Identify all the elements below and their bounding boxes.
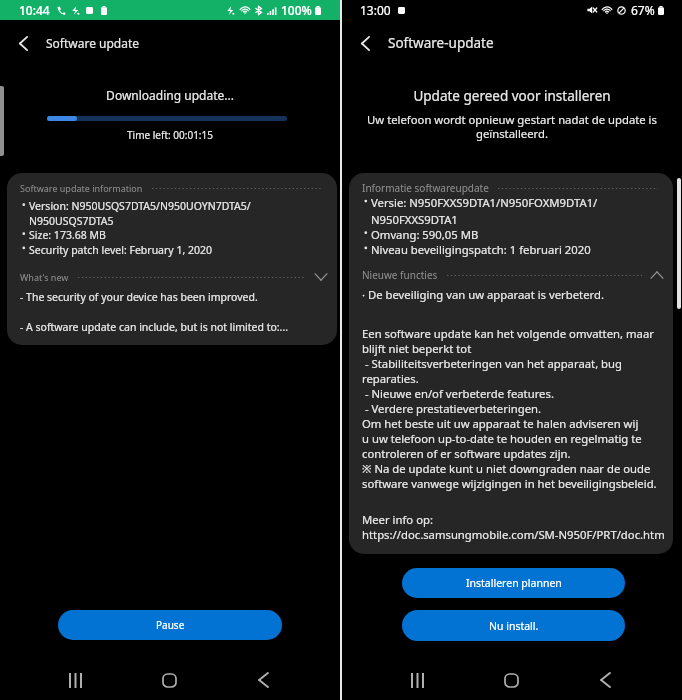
button[interactable]: Pause	[58, 610, 282, 640]
button[interactable]: Back	[558, 660, 652, 700]
staticText: Informatie softwareupdate	[362, 181, 489, 195]
staticText: Nieuwe functies	[362, 268, 438, 282]
staticText: - The security of your device has been i…	[20, 290, 258, 304]
staticText: Size: 173.68 MB	[29, 228, 106, 242]
staticText: Uw telefoon wordt opnieuw gestart nadat …	[342, 112, 682, 142]
staticText: Update gereed voor installeren	[342, 87, 682, 105]
button[interactable]: Back	[216, 660, 310, 700]
button[interactable]: Home	[464, 660, 558, 700]
staticText: https://doc.samsungmobile.com/SM-N950F/P…	[362, 527, 664, 542]
staticText: Installeren plannen	[466, 576, 562, 590]
staticText: 13:00	[360, 2, 391, 18]
staticText: 100%	[281, 2, 312, 18]
staticText: Security patch level: February 1, 2020	[29, 243, 213, 257]
staticText: Time left: 00:01:15	[0, 128, 340, 142]
staticText: Versie: N950FXXS9DTA1/N950FOXM9DTA1/ N95…	[371, 195, 598, 227]
staticText: Software update information	[20, 182, 143, 194]
button[interactable]: Nu install.	[402, 610, 625, 641]
button[interactable]: Recent apps	[28, 660, 122, 700]
staticText: Een software update kan het volgende omv…	[362, 326, 657, 491]
staticText: Software update	[46, 35, 140, 51]
staticText: Nu install.	[489, 619, 539, 633]
staticText: 67%	[631, 2, 655, 18]
button[interactable]: Installeren plannen	[402, 568, 625, 598]
button[interactable]: Recent apps	[370, 660, 464, 700]
button[interactable]: Home	[122, 660, 216, 700]
staticText: Meer info op:	[362, 512, 433, 527]
staticText: 10:44	[19, 2, 50, 18]
staticText: Niveau beveiligingspatch: 1 februari 202…	[371, 242, 591, 257]
staticText: Software-update	[388, 34, 494, 52]
staticText: What's new	[20, 271, 69, 283]
staticText: Pause	[156, 618, 185, 632]
staticText: Omvang: 590,05 MB	[371, 227, 479, 242]
staticText: · De beveiliging van uw apparaat is verb…	[362, 287, 604, 302]
button[interactable]: Back	[354, 32, 376, 54]
button[interactable]: Back	[12, 32, 34, 54]
staticText: - A software update can include, but is …	[20, 320, 289, 334]
staticText: Downloading update...	[0, 87, 340, 103]
staticText: Version: N950USQS7DTA5/N950UOYN7DTA5/ N9…	[29, 199, 251, 228]
